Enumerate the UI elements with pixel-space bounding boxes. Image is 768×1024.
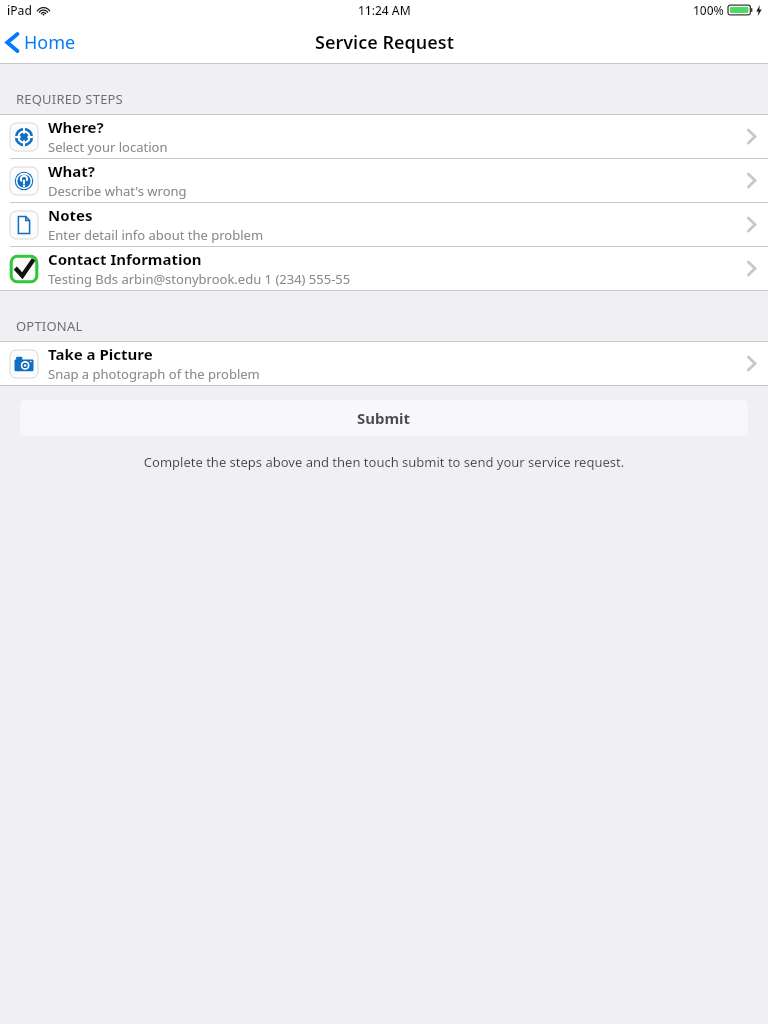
staticText: Complete the steps above and then touch … (0, 453, 768, 471)
staticText: Snap a photograph of the problem (48, 365, 260, 383)
staticText: REQUIRED STEPS (16, 90, 123, 108)
button[interactable]: What? (0, 159, 768, 202)
staticText: Contact Information (48, 249, 202, 269)
button[interactable]: Where? (0, 115, 768, 158)
staticText: Describe what's wrong (48, 182, 187, 200)
staticText: 11:24 AM (358, 2, 411, 18)
staticText: 100% (693, 2, 724, 18)
button[interactable]: Home (0, 26, 86, 59)
button[interactable]: Submit (20, 400, 748, 436)
staticText: Submit (357, 408, 411, 428)
staticText: Home (24, 30, 76, 55)
staticText: Service Request (315, 30, 454, 55)
button[interactable]: Notes (0, 203, 768, 246)
staticText: OPTIONAL (16, 317, 83, 335)
staticText: Where? (48, 117, 104, 137)
staticText: Notes (48, 205, 93, 225)
staticText: Select your location (48, 138, 168, 156)
staticText: Enter detail info about the problem (48, 226, 264, 244)
staticText: Take a Picture (48, 344, 153, 364)
button[interactable]: Contact Information (0, 247, 768, 290)
button[interactable]: Take a Picture (0, 342, 768, 385)
staticText: Testing Bds arbin@stonybrook.edu 1 (234)… (48, 270, 351, 288)
staticText: What? (48, 161, 95, 181)
staticText: iPad (7, 2, 32, 18)
